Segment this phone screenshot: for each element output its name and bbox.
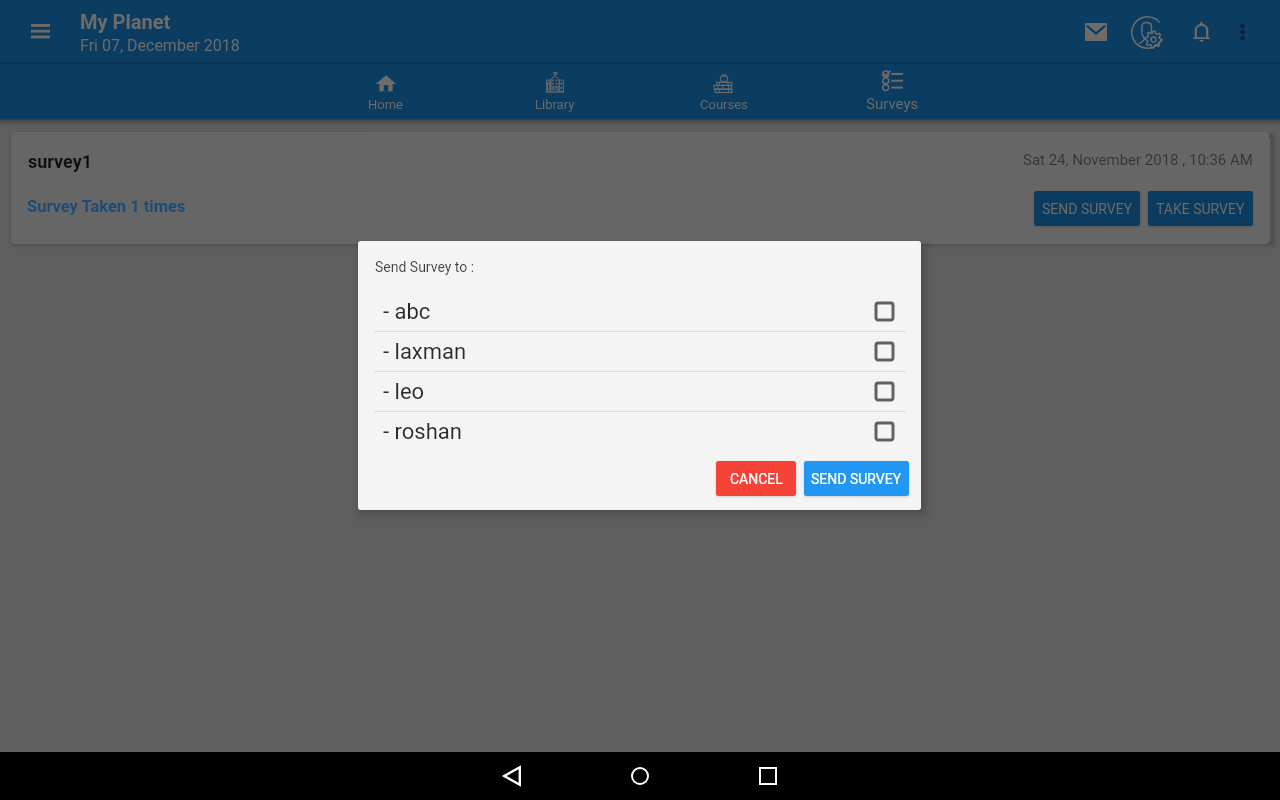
staticText: Fri 07, December 2018 [80, 36, 240, 55]
staticText: Library [535, 97, 575, 112]
staticText: Home [368, 97, 403, 112]
staticText: TAKE SURVEY [1156, 201, 1245, 217]
button[interactable]: SEND SURVEY [804, 461, 909, 496]
staticText: Courses [700, 97, 748, 112]
staticText: SEND SURVEY [811, 471, 902, 487]
button[interactable]: - laxman [358, 332, 921, 371]
button[interactable]: - abc [358, 292, 921, 331]
staticText: SEND SURVEY [1042, 201, 1133, 217]
staticText: Send Survey to : [375, 259, 475, 275]
staticText: Survey Taken 1 times [27, 197, 186, 216]
staticText: Sat 24, November 2018 , 10:36 AM [1023, 151, 1253, 169]
button[interactable]: - leo [358, 372, 921, 411]
button[interactable]: SEND SURVEY [1034, 191, 1140, 226]
staticText: - laxman [383, 339, 467, 365]
staticText: Surveys [866, 95, 919, 113]
button[interactable]: More options [1219, 9, 1265, 55]
button[interactable]: Recent apps [736, 752, 800, 800]
button[interactable]: TAKE SURVEY [1148, 191, 1253, 226]
button[interactable]: CANCEL [716, 461, 796, 496]
button[interactable]: Back [480, 752, 544, 800]
staticText: - roshan [383, 419, 462, 445]
staticText: - leo [383, 379, 425, 405]
button[interactable]: Account settings [1124, 9, 1170, 55]
button[interactable]: - roshan [358, 412, 921, 451]
staticText: My Planet [80, 10, 171, 33]
button[interactable]: Mail [1073, 9, 1119, 55]
button[interactable]: Home [301, 64, 470, 119]
button[interactable]: Home [608, 752, 672, 800]
button[interactable]: Library [470, 64, 639, 119]
button[interactable]: Notifications [1178, 9, 1224, 55]
staticText: - abc [383, 299, 431, 325]
button[interactable]: Open navigation drawer [17, 8, 63, 54]
staticText: CANCEL [730, 471, 783, 487]
button[interactable]: Courses [639, 64, 808, 119]
staticText: survey1 [28, 151, 93, 172]
button[interactable]: survey1 [11, 132, 1269, 244]
button[interactable]: Surveys [808, 64, 977, 119]
